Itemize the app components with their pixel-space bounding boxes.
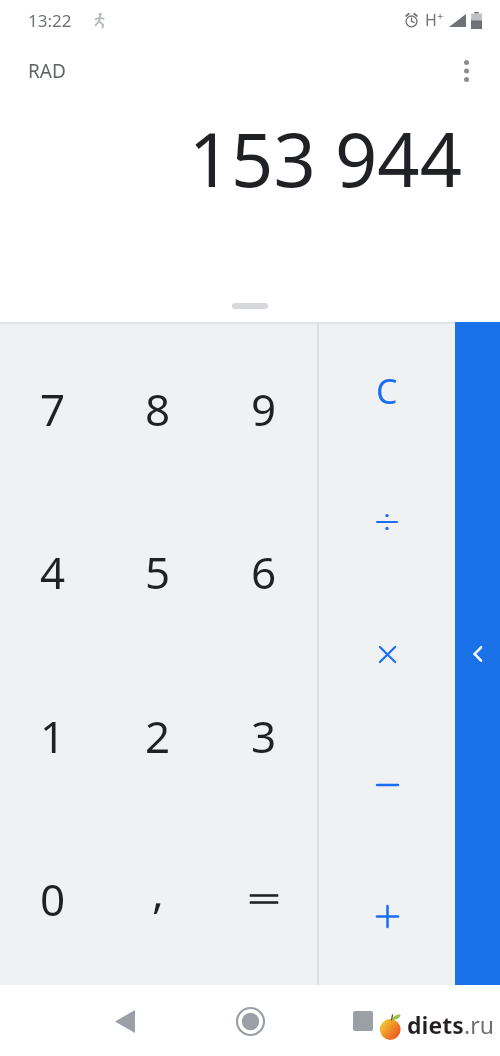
staticText: 13:22 xyxy=(28,9,72,32)
button[interactable]: Divide xyxy=(319,460,455,584)
staticText: 9 xyxy=(251,379,277,439)
button[interactable]: 9 xyxy=(211,331,317,486)
staticText: 6 xyxy=(251,542,277,602)
other: Minus xyxy=(377,775,398,795)
staticText: diets xyxy=(407,1009,464,1040)
staticText: 153 944 xyxy=(188,108,462,209)
button[interactable]: 4 xyxy=(0,494,105,649)
button[interactable]: Plus xyxy=(319,854,455,978)
staticText: 7 xyxy=(40,379,66,439)
button[interactable]: Multiply xyxy=(319,592,455,716)
other: Clear xyxy=(376,368,398,414)
staticText: 3 xyxy=(251,706,277,766)
staticText: 0 xyxy=(40,869,66,929)
button[interactable]: 5 xyxy=(105,494,211,649)
other: Plus xyxy=(377,906,398,927)
staticText: 1 xyxy=(40,706,66,766)
button[interactable]: 6 xyxy=(211,494,317,649)
button[interactable]: , xyxy=(105,821,211,976)
other: Divide xyxy=(377,512,397,532)
button[interactable]: 8 xyxy=(105,331,211,486)
button[interactable]: Expand pad xyxy=(232,303,268,309)
staticText: C xyxy=(376,368,398,414)
staticText: , xyxy=(152,861,164,921)
button[interactable]: 3 xyxy=(211,658,317,813)
button[interactable]: 7 xyxy=(0,331,105,486)
button[interactable]: Home xyxy=(225,996,275,1046)
other: Multiply xyxy=(378,645,397,664)
button[interactable]: Recent apps xyxy=(338,996,388,1046)
button[interactable]: More options xyxy=(444,49,488,93)
button[interactable]: Back xyxy=(100,996,150,1046)
staticText: H xyxy=(425,9,437,31)
staticText: + xyxy=(437,8,444,23)
staticText: 4 xyxy=(40,542,66,602)
button[interactable]: Clear xyxy=(319,329,455,453)
staticText: 8 xyxy=(145,379,171,439)
button[interactable]: 2 xyxy=(105,658,211,813)
staticText: .ru xyxy=(464,1009,494,1040)
button[interactable]: Open advanced pad xyxy=(455,322,500,985)
other: Equals xyxy=(251,891,277,907)
staticText: 5 xyxy=(145,542,171,602)
button[interactable]: 0 xyxy=(0,821,105,976)
staticText: 2 xyxy=(145,706,171,766)
button[interactable]: Equals xyxy=(211,821,317,976)
button[interactable]: 1 xyxy=(0,658,105,813)
button[interactable]: RAD xyxy=(0,52,94,90)
button[interactable]: Minus xyxy=(319,723,455,847)
staticText: RAD xyxy=(28,58,66,84)
